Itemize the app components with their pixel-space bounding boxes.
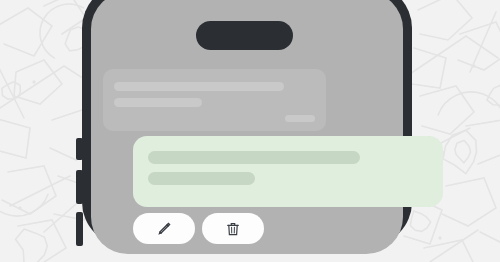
- button[interactable]: Delete: [202, 213, 264, 244]
- button[interactable]: [133, 136, 443, 207]
- button[interactable]: Edit: [133, 213, 195, 244]
- button[interactable]: [103, 69, 326, 131]
